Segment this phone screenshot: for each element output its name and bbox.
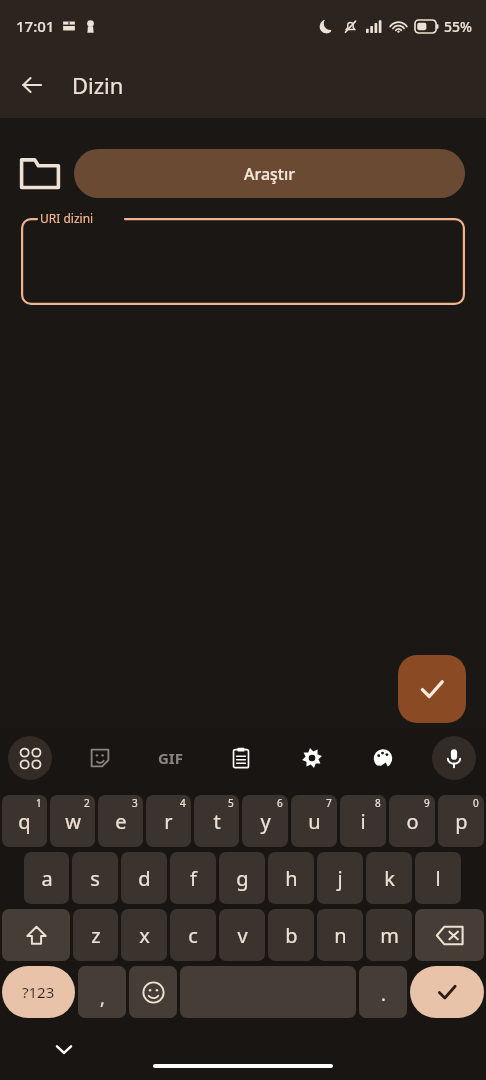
staticText: a bbox=[41, 865, 53, 892]
button[interactable]: r bbox=[146, 795, 191, 847]
staticText: Araştır bbox=[244, 163, 296, 185]
staticText: ?123 bbox=[22, 982, 55, 1002]
button[interactable]: d bbox=[121, 852, 167, 904]
staticText: b bbox=[285, 922, 298, 949]
staticText: p bbox=[455, 808, 468, 835]
button[interactable]: k bbox=[366, 852, 412, 904]
button[interactable]: t bbox=[194, 795, 239, 847]
staticText: 55% bbox=[444, 17, 472, 36]
staticText: n bbox=[334, 922, 347, 949]
button[interactable]: Araştır bbox=[74, 149, 465, 198]
staticText: k bbox=[384, 865, 395, 892]
staticText: x bbox=[139, 922, 150, 949]
button[interactable]: Enter bbox=[410, 966, 484, 1018]
staticText: URI dizini bbox=[40, 210, 94, 226]
button[interactable]: j bbox=[317, 852, 363, 904]
button[interactable]: Shift bbox=[2, 909, 70, 961]
staticText: Dizin bbox=[72, 70, 124, 100]
staticText: . bbox=[381, 982, 386, 1007]
button[interactable]: Choose folder bbox=[14, 147, 66, 199]
staticText: 5 bbox=[228, 796, 234, 810]
staticText: i bbox=[360, 808, 366, 835]
button[interactable]: o bbox=[389, 795, 435, 847]
button[interactable]: l bbox=[415, 852, 461, 904]
button[interactable]: x bbox=[121, 909, 167, 961]
button[interactable]: GIF bbox=[148, 736, 192, 780]
staticText: 4 bbox=[180, 796, 186, 810]
staticText: 2 bbox=[84, 796, 90, 810]
staticText: 8 bbox=[375, 796, 381, 810]
button[interactable]: Settings bbox=[290, 736, 334, 780]
staticText: 17:01 bbox=[16, 16, 55, 36]
staticText: t bbox=[213, 808, 221, 835]
button[interactable]: Hide keyboard bbox=[44, 1029, 84, 1069]
button[interactable]: , bbox=[78, 966, 126, 1018]
staticText: 6 bbox=[277, 796, 283, 810]
staticText: 9 bbox=[424, 796, 430, 810]
staticText: z bbox=[91, 922, 101, 949]
staticText: s bbox=[90, 865, 100, 892]
button[interactable]: w bbox=[50, 795, 95, 847]
button[interactable]: b bbox=[268, 909, 314, 961]
staticText: w bbox=[65, 808, 81, 835]
button[interactable]: g bbox=[219, 852, 265, 904]
staticText: g bbox=[236, 865, 249, 892]
staticText: , bbox=[100, 986, 105, 1011]
button[interactable]: e bbox=[98, 795, 143, 847]
button[interactable]: m bbox=[366, 909, 412, 961]
staticText: u bbox=[308, 808, 321, 835]
button[interactable]: s bbox=[72, 852, 118, 904]
button[interactable]: Confirm bbox=[398, 655, 466, 723]
staticText: 3 bbox=[132, 796, 138, 810]
staticText: v bbox=[237, 922, 248, 949]
button[interactable]: u bbox=[291, 795, 337, 847]
button[interactable]: i bbox=[340, 795, 386, 847]
staticText: h bbox=[285, 865, 298, 892]
staticText: 7 bbox=[326, 796, 332, 810]
staticText: 1 bbox=[36, 796, 42, 810]
staticText: m bbox=[380, 922, 399, 949]
staticText: j bbox=[337, 865, 343, 892]
staticText: e bbox=[115, 808, 127, 835]
staticText: GIF bbox=[158, 748, 183, 768]
button[interactable]: c bbox=[170, 909, 216, 961]
staticText: d bbox=[138, 865, 151, 892]
button[interactable]: Clipboard bbox=[219, 736, 263, 780]
button[interactable]: y bbox=[242, 795, 288, 847]
button[interactable]: v bbox=[219, 909, 265, 961]
button[interactable]: Sticker bbox=[78, 736, 122, 780]
button[interactable]: q bbox=[2, 795, 47, 847]
button[interactable]: Backspace bbox=[415, 909, 484, 961]
button[interactable]: . bbox=[359, 966, 407, 1018]
button[interactable]: z bbox=[73, 909, 118, 961]
staticText: f bbox=[190, 865, 197, 892]
button[interactable]: Back bbox=[8, 61, 56, 109]
staticText: l bbox=[435, 865, 441, 892]
button[interactable]: Voice input bbox=[432, 736, 476, 780]
staticText: o bbox=[406, 808, 419, 835]
staticText: c bbox=[188, 922, 198, 949]
button[interactable]: ?123 bbox=[2, 966, 75, 1018]
staticText: y bbox=[260, 808, 271, 835]
button[interactable]: p bbox=[438, 795, 484, 847]
button[interactable]: Emoji bbox=[129, 966, 177, 1018]
button[interactable]: n bbox=[317, 909, 363, 961]
button[interactable]: Theme bbox=[361, 736, 405, 780]
button[interactable]: Apps bbox=[8, 736, 52, 780]
staticText: q bbox=[18, 808, 31, 835]
button[interactable]: h bbox=[268, 852, 314, 904]
button[interactable]: f bbox=[170, 852, 216, 904]
staticText: r bbox=[164, 808, 173, 835]
button[interactable]: URI dizini bbox=[21, 217, 465, 305]
button[interactable]: a bbox=[24, 852, 69, 904]
staticText: 0 bbox=[473, 796, 479, 810]
